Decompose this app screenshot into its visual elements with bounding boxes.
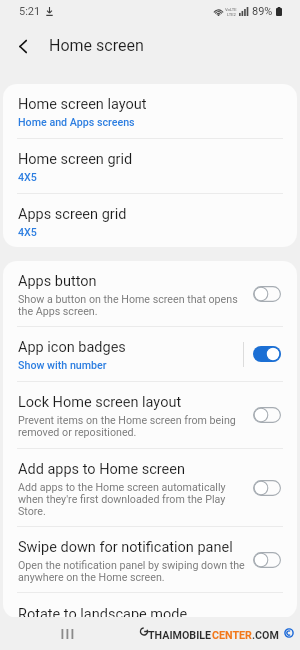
button[interactable]: Home screen layout bbox=[3, 84, 297, 138]
staticText: Home screen bbox=[49, 36, 144, 55]
staticText: Show with number bbox=[18, 359, 107, 372]
button[interactable]: Lock Home screen layout bbox=[3, 382, 297, 448]
staticText: Show a button on the Home screen that op… bbox=[18, 293, 238, 317]
staticText: THAIMOBILE bbox=[148, 629, 212, 642]
button[interactable]: Apps screen grid bbox=[3, 194, 297, 247]
button[interactable]: Swipe down for notification panel bbox=[3, 527, 297, 592]
staticText: App icon badges bbox=[18, 339, 126, 356]
button[interactable]: App icon badges bbox=[3, 327, 297, 381]
button[interactable]: Back bbox=[12, 35, 34, 57]
staticText: Home and Apps screens bbox=[18, 116, 135, 129]
staticText: CENTER bbox=[212, 629, 252, 642]
staticText: VoLTE bbox=[225, 7, 237, 12]
staticText: Rotate to landscape mode bbox=[18, 606, 188, 618]
staticText: LTE2 bbox=[227, 12, 236, 17]
staticText: Add apps to Home screen bbox=[18, 461, 185, 478]
staticText: Home screen grid bbox=[18, 151, 133, 168]
button[interactable]: Add apps to Home screen bbox=[3, 449, 297, 526]
staticText: 89% bbox=[252, 5, 273, 18]
staticText: 5:21 bbox=[19, 5, 41, 18]
staticText: .COM bbox=[252, 629, 279, 642]
staticText: Apps button bbox=[18, 273, 97, 290]
staticText: Swipe down for notification panel bbox=[18, 539, 233, 556]
staticText: 4X5 bbox=[18, 171, 37, 184]
staticText: 4X5 bbox=[18, 226, 37, 239]
staticText: Lock Home screen layout bbox=[18, 394, 182, 411]
staticText: Home screen layout bbox=[18, 96, 147, 113]
button[interactable]: Rotate to landscape mode bbox=[3, 593, 297, 618]
button[interactable]: Recents bbox=[53, 617, 81, 650]
staticText: Add apps to the Home screen automaticall… bbox=[18, 481, 226, 517]
staticText: Prevent items on the Home screen from be… bbox=[18, 414, 236, 438]
staticText: Apps screen grid bbox=[18, 206, 127, 223]
staticText: Open the notification panel by swiping d… bbox=[18, 559, 245, 583]
button[interactable]: Home screen grid bbox=[3, 139, 297, 193]
button[interactable]: Apps button bbox=[3, 261, 297, 326]
